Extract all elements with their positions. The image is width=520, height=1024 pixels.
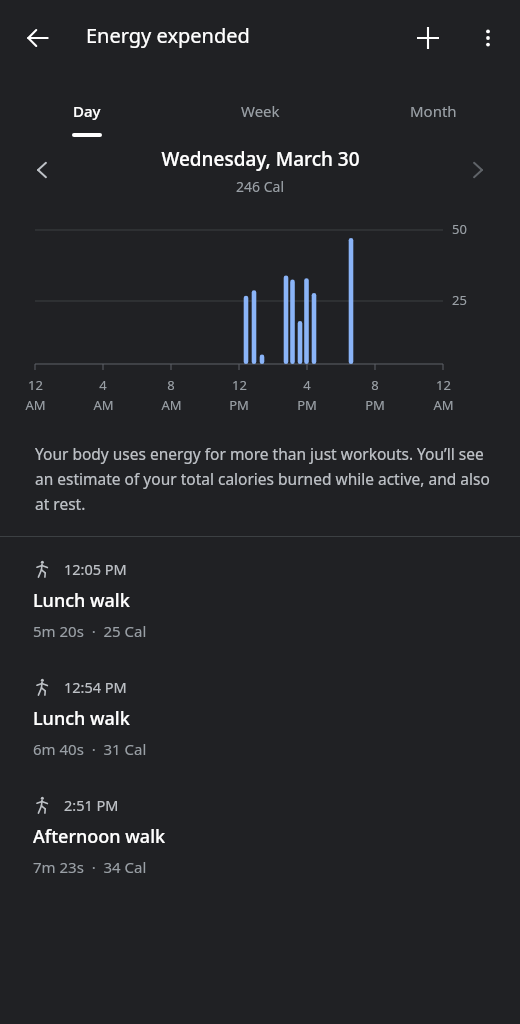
staticText: 12:54 PM (64, 677, 127, 697)
button[interactable]: Week (174, 74, 347, 146)
staticText: 6m 40s · 31 Cal (33, 739, 147, 759)
staticText: 4 (303, 376, 311, 394)
button[interactable]: Back (18, 18, 58, 58)
staticText: Energy expended (86, 22, 250, 49)
button[interactable]: 12:05 PM (0, 537, 520, 655)
button[interactable]: 12:54 PM (0, 655, 520, 773)
staticText: 12 (436, 376, 451, 394)
button[interactable]: Previous day (22, 150, 62, 190)
staticText: Month (410, 101, 457, 121)
staticText: 25 (452, 291, 467, 309)
button[interactable]: Next day (458, 150, 498, 190)
staticText: PM (297, 396, 317, 414)
staticText: 2:51 PM (64, 795, 119, 815)
staticText: AM (161, 396, 182, 414)
staticText: PM (229, 396, 249, 414)
staticText: 4 (99, 376, 107, 394)
staticText: AM (433, 396, 454, 414)
staticText: 50 (452, 220, 467, 238)
staticText: AM (25, 396, 46, 414)
staticText: Afternoon walk (33, 824, 166, 849)
button[interactable]: Day (0, 74, 174, 146)
button[interactable]: 2:51 PM (0, 773, 520, 891)
staticText: Lunch walk (33, 588, 130, 613)
staticText: 12:05 PM (64, 559, 127, 579)
staticText: 8 (167, 376, 175, 394)
staticText: 8 (371, 376, 379, 394)
staticText: Day (73, 101, 101, 121)
button[interactable]: Add (406, 16, 450, 60)
staticText: AM (93, 396, 114, 414)
staticText: 246 Cal (236, 177, 284, 196)
staticText: Your body uses energy for more than just… (35, 443, 490, 514)
staticText: 12 (232, 376, 247, 394)
staticText: Lunch walk (33, 706, 130, 731)
staticText: PM (365, 396, 385, 414)
staticText: Wednesday, March 30 (161, 146, 360, 172)
staticText: Week (241, 101, 280, 121)
staticText: 12 (28, 376, 43, 394)
staticText: 5m 20s · 25 Cal (33, 621, 147, 641)
button[interactable]: More options (466, 16, 510, 60)
button[interactable]: Month (347, 74, 520, 146)
staticText: 7m 23s · 34 Cal (33, 857, 147, 877)
